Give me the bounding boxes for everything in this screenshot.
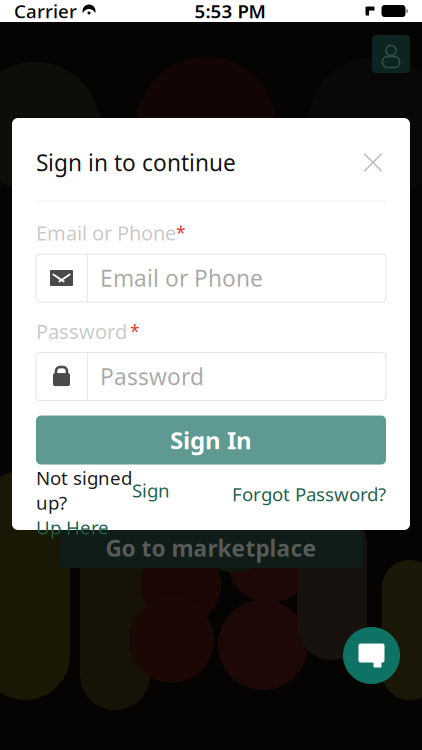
staticText: Go to marketplace bbox=[105, 533, 316, 563]
button[interactable]: Sign bbox=[132, 478, 170, 503]
button[interactable]: Forgot Password? bbox=[232, 482, 386, 506]
staticText: * bbox=[130, 320, 140, 343]
button[interactable]: Close bbox=[351, 140, 395, 184]
staticText: Sign bbox=[132, 478, 170, 503]
staticText: Forgot Password? bbox=[232, 482, 386, 506]
staticText: Sign In bbox=[170, 424, 252, 456]
staticText: 5:53 PM bbox=[194, 0, 265, 23]
staticText: Password bbox=[36, 318, 127, 345]
staticText: Carrier bbox=[14, 0, 77, 23]
button[interactable]: Account bbox=[372, 35, 410, 73]
staticText: Up Here bbox=[36, 515, 109, 540]
staticText: Email or Phone bbox=[100, 263, 263, 293]
button[interactable]: Up Here bbox=[36, 515, 109, 540]
staticText: * bbox=[176, 221, 186, 244]
button[interactable]: Sign In bbox=[36, 416, 386, 465]
staticText: Not signed up? bbox=[36, 465, 132, 515]
button[interactable]: Chat support bbox=[343, 627, 400, 684]
button[interactable]: Go to marketplace bbox=[59, 528, 363, 568]
staticText: Sign in to continue bbox=[36, 147, 236, 177]
staticText: Password bbox=[100, 361, 204, 392]
staticText: Email or Phone bbox=[36, 219, 176, 246]
